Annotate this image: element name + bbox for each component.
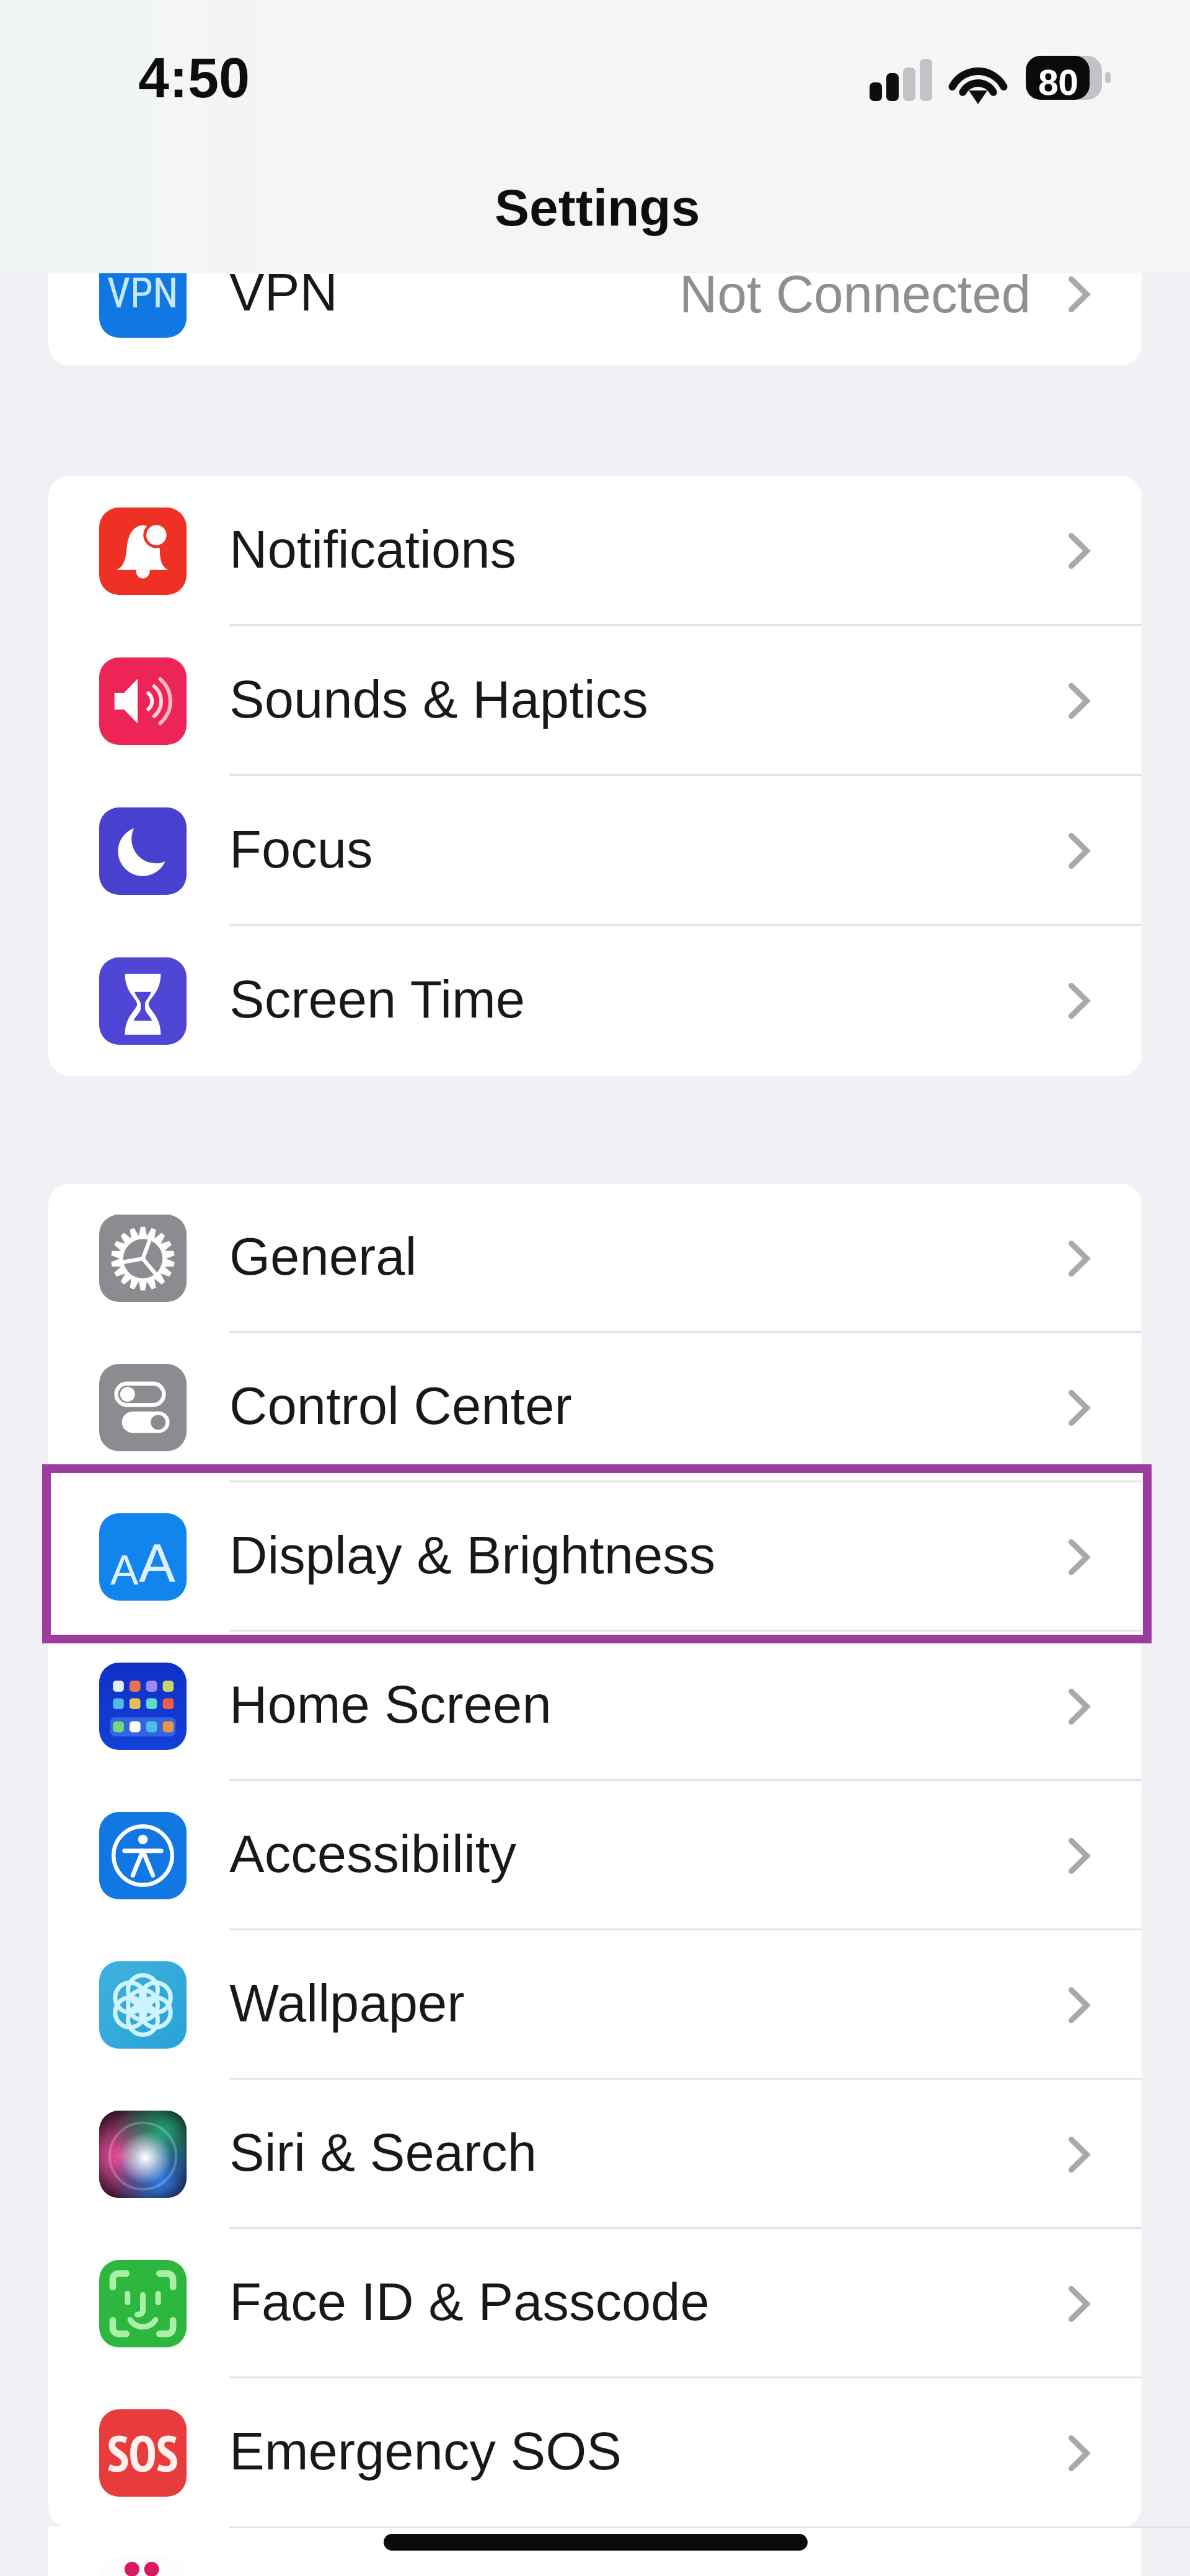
button[interactable]: Focus (48, 776, 1142, 926)
button[interactable]: Notifications (48, 476, 1142, 626)
staticText: Home Screen (229, 1675, 552, 1734)
staticText: 80 (1026, 62, 1090, 102)
button[interactable]: Wallpaper (48, 1930, 1142, 2080)
staticText: VPN (229, 273, 338, 322)
staticText: Emergency SOS (229, 2422, 622, 2481)
button[interactable]: Face ID & Passcode (48, 2229, 1142, 2378)
staticText: General (229, 1227, 417, 1286)
staticText: Wallpaper (229, 1974, 465, 2033)
button[interactable]: Sounds & Haptics (48, 626, 1142, 776)
staticText: VPN (107, 273, 178, 317)
staticText: Display & Brightness (229, 1526, 716, 1585)
staticText: Focus (229, 820, 373, 879)
staticText: 4:50 (138, 47, 250, 110)
staticText: Sounds & Haptics (229, 670, 648, 729)
staticText: SOS (107, 2421, 178, 2486)
staticText: Screen Time (229, 970, 526, 1029)
staticText: Notifications (229, 520, 516, 579)
staticText: Settings (495, 178, 700, 237)
button[interactable]: Home Screen (48, 1632, 1142, 1781)
button[interactable]: Screen Time (48, 926, 1142, 1076)
button[interactable]: A (48, 1482, 1142, 1632)
staticText: A (139, 1532, 175, 1593)
button[interactable]: SOS (48, 2378, 1142, 2528)
button[interactable]: General (48, 1184, 1142, 1333)
button[interactable]: VPN (48, 273, 1142, 366)
button[interactable]: Control Center (48, 1333, 1142, 1482)
staticText: A (110, 1546, 139, 1593)
staticText: Face ID & Passcode (229, 2272, 710, 2331)
staticText: Not Connected (679, 273, 1031, 323)
staticText: Control Center (229, 1376, 572, 1435)
button[interactable] (48, 2526, 1142, 2576)
staticText: Accessibility (229, 1824, 516, 1883)
button[interactable]: Accessibility (48, 1781, 1142, 1930)
button[interactable]: Siri & Search (48, 2080, 1142, 2229)
staticText: Siri & Search (229, 2123, 537, 2182)
